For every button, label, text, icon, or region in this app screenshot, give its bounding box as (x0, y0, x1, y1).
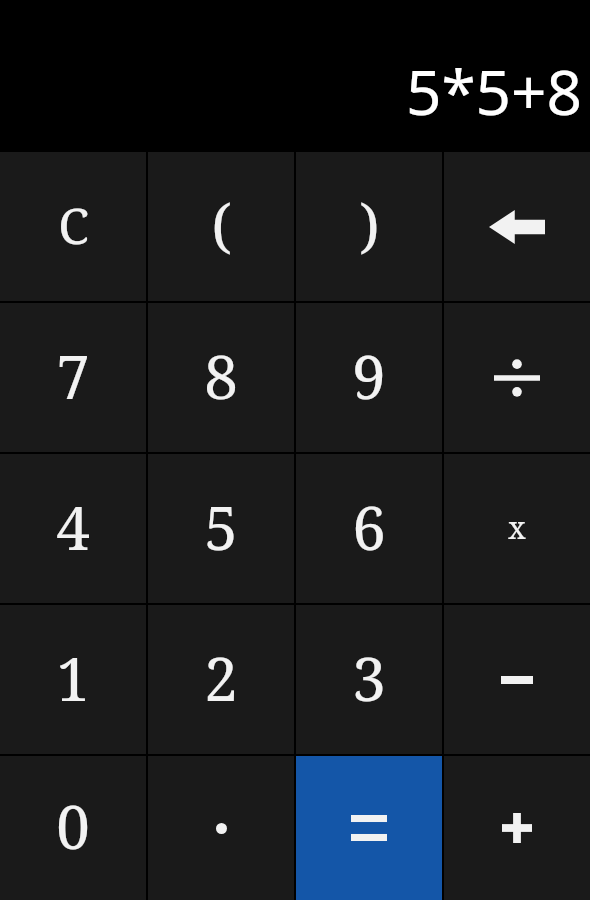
button[interactable]: Backspace (444, 152, 590, 301)
button[interactable]: x (444, 454, 590, 603)
staticText: 6 (352, 486, 386, 568)
button[interactable]: 2 (148, 605, 294, 754)
staticText: 1 (56, 637, 90, 719)
button[interactable]: 3 (296, 605, 442, 754)
button[interactable]: 7 (0, 303, 146, 452)
staticText: 8 (204, 335, 238, 417)
staticText: ) (359, 185, 380, 264)
button[interactable]: 8 (148, 303, 294, 452)
staticText: 5 (204, 486, 238, 568)
button[interactable]: 5 (148, 454, 294, 603)
staticText: 2 (204, 637, 238, 719)
button[interactable]: Decimal point (148, 756, 294, 900)
button[interactable]: 1 (0, 605, 146, 754)
button[interactable]: ( (148, 152, 294, 301)
button[interactable]: Minus (444, 605, 590, 754)
button[interactable]: 6 (296, 454, 442, 603)
staticText: x (508, 507, 526, 548)
button[interactable]: Divide (444, 303, 590, 452)
staticText: C (58, 191, 89, 259)
button[interactable]: 4 (0, 454, 146, 603)
staticText: ( (211, 185, 232, 264)
button[interactable]: Plus (444, 756, 590, 900)
staticText: 9 (352, 335, 386, 417)
button[interactable]: C (0, 152, 146, 301)
staticText: 7 (56, 335, 90, 417)
staticText: 3 (352, 637, 386, 719)
staticText: 0 (56, 785, 90, 867)
button[interactable]: Equals (296, 756, 442, 900)
staticText: 5*5+8 (405, 49, 582, 133)
button[interactable]: 0 (0, 756, 146, 900)
button[interactable]: ) (296, 152, 442, 301)
button[interactable]: 9 (296, 303, 442, 452)
staticText: 4 (56, 486, 90, 568)
